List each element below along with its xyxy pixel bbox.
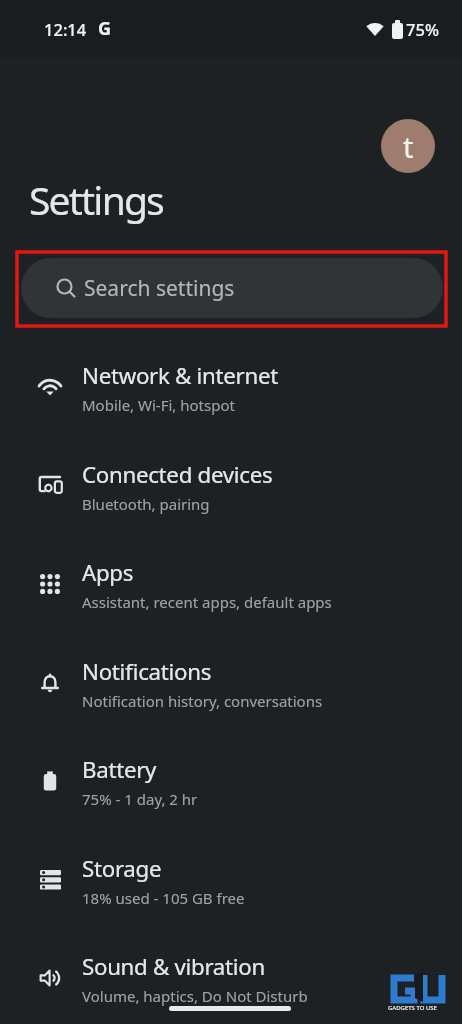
button[interactable]: Notifications — [0, 634, 462, 732]
button[interactable]: Storage — [0, 831, 462, 929]
staticText: Apps — [82, 557, 134, 587]
button[interactable]: Connected devices — [0, 437, 462, 535]
button[interactable]: Search settings — [21, 258, 443, 318]
button[interactable]: Network & internet — [0, 338, 462, 436]
staticText: 75% — [406, 18, 439, 40]
staticText: t — [403, 127, 414, 166]
staticText: Notifications — [82, 656, 212, 686]
button[interactable]: t — [381, 119, 435, 173]
staticText: Volume, haptics, Do Not Disturb — [82, 986, 308, 1006]
button[interactable]: Sound & vibration — [0, 929, 462, 1024]
staticText: Storage — [82, 853, 162, 883]
staticText: GADGETS TO USE — [388, 1004, 437, 1012]
staticText: Battery — [82, 754, 157, 784]
staticText: 75% - 1 day, 2 hr — [82, 789, 198, 809]
staticText: 18% used - 105 GB free — [82, 888, 245, 908]
staticText: 12:14 — [44, 18, 87, 40]
staticText: Sound & vibration — [82, 951, 265, 981]
staticText: G — [98, 16, 112, 41]
staticText: Connected devices — [82, 459, 273, 489]
staticText: Search settings — [84, 274, 235, 303]
staticText: Mobile, Wi-Fi, hotspot — [82, 395, 235, 415]
staticText: Assistant, recent apps, default apps — [82, 592, 332, 612]
button[interactable]: Battery — [0, 732, 462, 830]
staticText: Settings — [29, 173, 163, 226]
staticText: Notification history, conversations — [82, 691, 323, 711]
staticText: Bluetooth, pairing — [82, 494, 210, 514]
button[interactable]: Apps — [0, 535, 462, 633]
staticText: Network & internet — [82, 360, 278, 390]
